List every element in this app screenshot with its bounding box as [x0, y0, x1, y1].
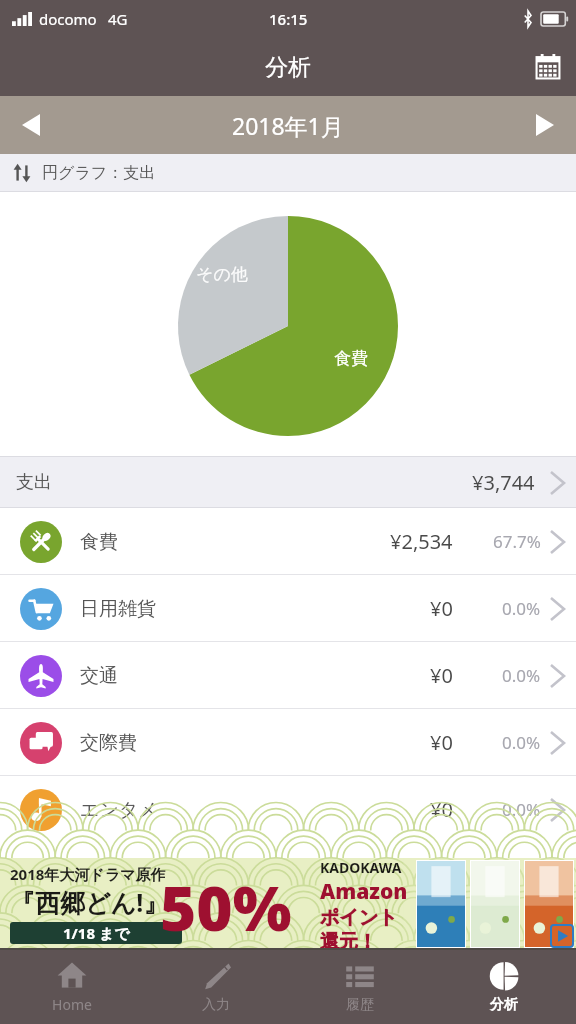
staticText: 0.0%: [502, 731, 541, 754]
staticText: その他: [196, 264, 248, 285]
staticText: ¥0: [430, 796, 453, 823]
button[interactable]: Previous month: [0, 96, 62, 154]
button[interactable]: Advertisement: [0, 858, 576, 950]
staticText: 支出: [16, 471, 52, 494]
button[interactable]: 分析: [432, 950, 576, 1024]
staticText: docomo: [39, 9, 97, 29]
button[interactable]: 支出: [0, 456, 576, 508]
staticText: ¥0: [430, 662, 453, 689]
staticText: 4G: [108, 9, 128, 29]
staticText: ¥2,534: [390, 528, 453, 555]
staticText: 2018年1月: [232, 110, 344, 141]
staticText: 履歴: [346, 996, 374, 1014]
staticText: 分析: [265, 53, 311, 82]
staticText: 食費: [80, 530, 118, 554]
button[interactable]: 入力: [144, 950, 288, 1024]
staticText: 交通: [80, 664, 118, 688]
staticText: 50%: [160, 865, 292, 949]
staticText: 円グラフ：支出: [42, 163, 156, 183]
button[interactable]: 交際費: [0, 709, 576, 776]
staticText: 1/18 まで: [63, 923, 130, 943]
staticText: Home: [52, 995, 92, 1014]
button[interactable]: 円グラフ：支出: [0, 154, 576, 192]
button[interactable]: Home: [0, 950, 144, 1024]
staticText: Amazon: [320, 877, 408, 906]
staticText: ¥0: [430, 729, 453, 756]
button[interactable]: Next month: [514, 96, 576, 154]
staticText: 67.7%: [493, 530, 541, 553]
staticText: 16:15: [269, 9, 308, 29]
staticText: 2018年大河ドラマ原作: [10, 864, 166, 884]
staticText: 分析: [490, 996, 518, 1014]
staticText: ポイント: [320, 906, 398, 930]
staticText: 食費: [334, 348, 368, 369]
staticText: 0.0%: [502, 664, 541, 687]
staticText: エンタメ: [80, 798, 158, 822]
staticText: 入力: [202, 996, 230, 1014]
staticText: KADOKAWA: [320, 858, 402, 877]
button[interactable]: Calendar: [520, 39, 576, 95]
staticText: 還元！: [320, 930, 377, 950]
staticText: 『西郷どん!』: [10, 885, 169, 919]
button[interactable]: 食費: [0, 508, 576, 575]
button[interactable]: 交通: [0, 642, 576, 709]
staticText: 交際費: [80, 731, 137, 755]
button[interactable]: 日用雑貨: [0, 575, 576, 642]
staticText: 0.0%: [502, 798, 541, 821]
staticText: 0.0%: [502, 597, 541, 620]
button[interactable]: エンタメ: [0, 776, 576, 843]
staticText: ¥3,744: [472, 469, 535, 496]
button[interactable]: 履歴: [288, 950, 432, 1024]
staticText: ¥0: [430, 595, 453, 622]
staticText: 日用雑貨: [80, 597, 156, 621]
